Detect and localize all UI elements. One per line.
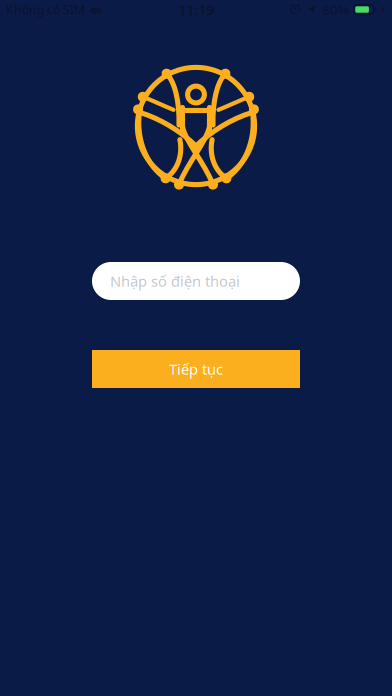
staticText: Không có SIM (6, 1, 85, 17)
staticText: Tiếp tục (169, 359, 223, 379)
button[interactable]: Nhập số điện thoại (92, 262, 300, 300)
button[interactable]: Tiếp tục (92, 350, 300, 388)
staticText: Nhập số điện thoại (110, 271, 240, 291)
staticText: 80% (322, 1, 349, 18)
staticText: 11:19 (178, 0, 214, 19)
